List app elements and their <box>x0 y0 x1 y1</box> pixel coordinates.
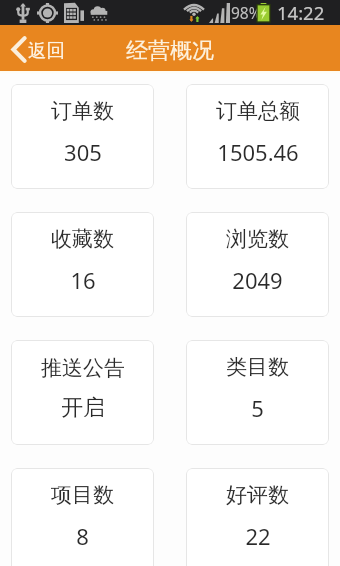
staticText: 订单总额 <box>216 98 300 124</box>
staticText: 订单数 <box>51 98 114 124</box>
staticText: 类目数 <box>226 354 289 380</box>
staticText: 14:22 <box>277 0 325 25</box>
button[interactable]: 收藏数 <box>11 212 154 317</box>
button[interactable]: 项目数 <box>11 468 154 566</box>
button[interactable]: 返回 <box>0 25 71 71</box>
staticText: 经营概况 <box>126 37 214 65</box>
staticText: 1505.46 <box>217 137 299 167</box>
staticText: 8 <box>76 521 89 551</box>
button[interactable]: 类目数 <box>186 340 329 445</box>
staticText: 98% <box>231 2 262 23</box>
staticText: 2049 <box>232 265 283 295</box>
staticText: 推送公告 <box>41 355 125 381</box>
staticText: 22 <box>245 521 271 551</box>
button[interactable]: 推送公告 <box>11 340 154 445</box>
staticText: 项目数 <box>51 482 114 508</box>
staticText: 浏览数 <box>226 226 289 252</box>
staticText: 16 <box>70 265 96 295</box>
staticText: 返回 <box>28 39 65 62</box>
button[interactable]: 好评数 <box>186 468 329 566</box>
button[interactable]: 浏览数 <box>186 212 329 317</box>
staticText: 好评数 <box>226 482 289 508</box>
staticText: 5 <box>251 393 264 423</box>
staticText: 305 <box>64 137 102 167</box>
staticText: 开启 <box>61 394 105 422</box>
button[interactable]: 订单数 <box>11 84 154 189</box>
button[interactable]: 订单总额 <box>186 84 329 189</box>
staticText: 收藏数 <box>51 226 114 252</box>
